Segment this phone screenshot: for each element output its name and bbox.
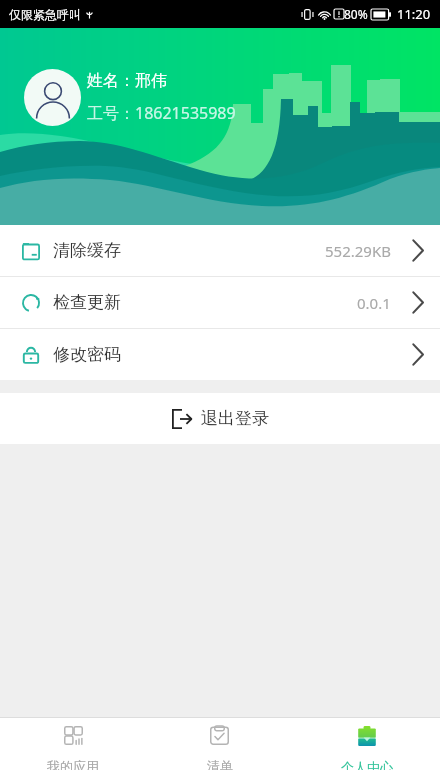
staticText: 姓名：邢伟 (87, 71, 167, 91)
button[interactable]: 退出登录 (0, 393, 440, 444)
button[interactable]: 修改密码 (0, 329, 440, 380)
staticText: 我的应用 (47, 758, 99, 770)
staticText: 清单 (207, 758, 233, 770)
staticText: 个人中心 (341, 759, 393, 770)
staticText: 清除缓存 (53, 240, 121, 261)
other: 清单 (210, 726, 229, 745)
button[interactable]: 检查更新 (0, 277, 440, 328)
staticText: 0.0.1 (357, 293, 391, 313)
staticText: 11:20 (397, 5, 431, 23)
staticText: 检查更新 (53, 292, 121, 313)
button[interactable]: 清单 (146, 717, 293, 770)
staticText: 修改密码 (53, 344, 121, 365)
other: 个人中心 (357, 726, 377, 746)
button[interactable]: 我的应用 (0, 717, 146, 770)
staticText: 退出登录 (201, 408, 269, 429)
other: 我的应用 (64, 726, 83, 745)
staticText: 工号：18621535989 (87, 102, 236, 124)
staticText: 80% (344, 6, 368, 22)
button[interactable]: 个人中心 (293, 717, 440, 770)
staticText: 仅限紧急呼叫 (9, 7, 81, 22)
staticText: 552.29KB (325, 241, 391, 261)
button[interactable]: 清除缓存 (0, 225, 440, 276)
